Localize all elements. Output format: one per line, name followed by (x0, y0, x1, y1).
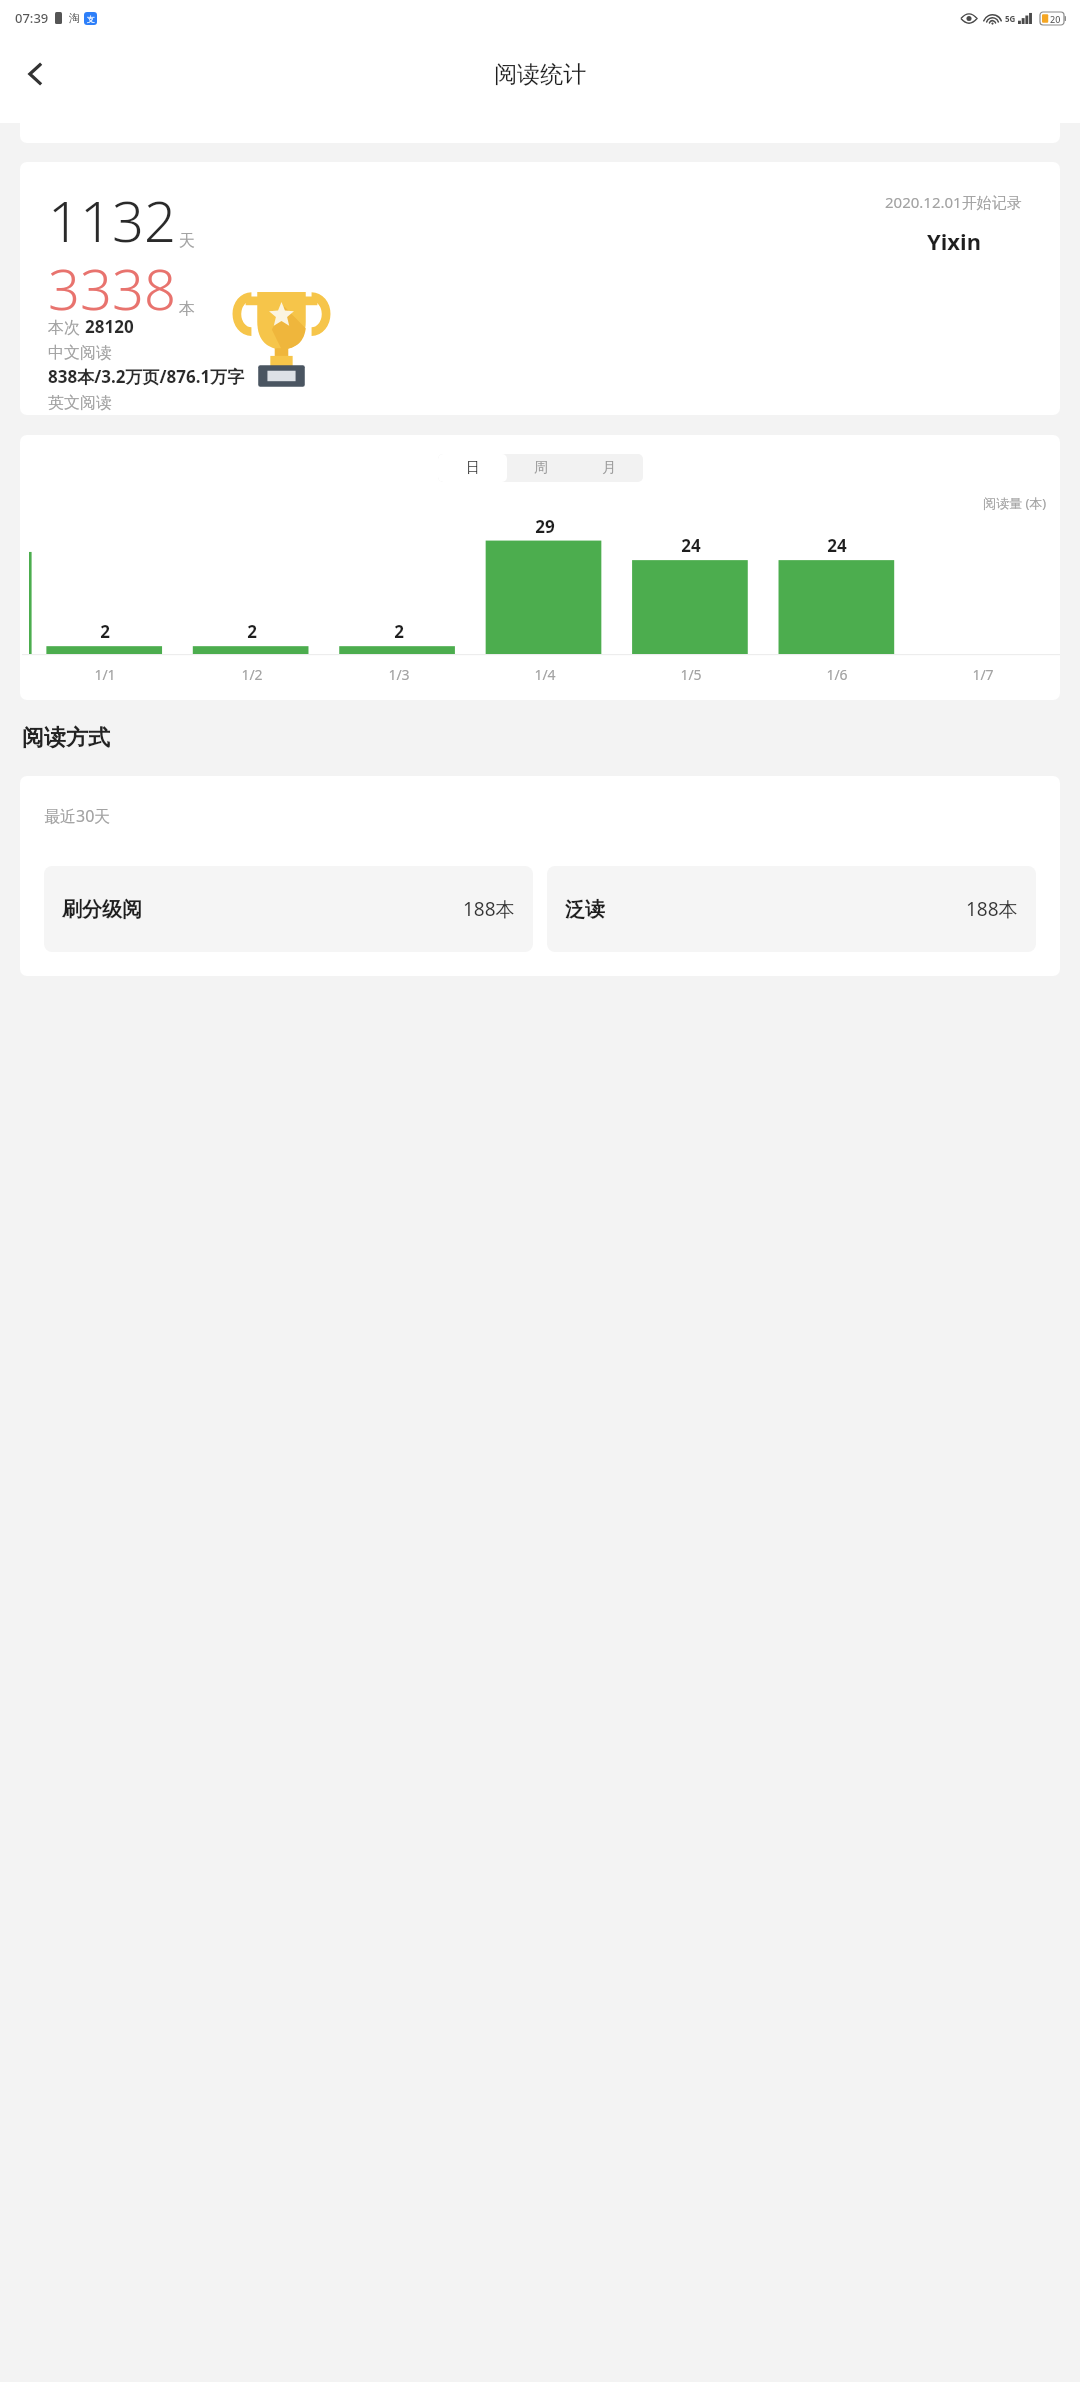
staticText: 2 (247, 620, 257, 643)
staticText: 英文阅读 (48, 393, 112, 413)
button[interactable]: 周 (507, 454, 575, 482)
staticText: 1/6 (826, 665, 848, 684)
staticText: 2 (394, 620, 404, 643)
button[interactable]: 泛读 (547, 866, 1036, 952)
staticText: 07:39 (15, 9, 49, 27)
staticText: 1/2 (241, 665, 263, 684)
button[interactable]: 2020.12.01开始记录 (20, 162, 1060, 415)
staticText: 838本/3.2万页/876.1万字 (48, 365, 245, 388)
staticText: 最近30天 (44, 805, 111, 827)
staticText: 中文阅读 (48, 343, 112, 363)
staticText: 1132 (48, 182, 176, 258)
staticText: 支 (87, 14, 95, 24)
staticText: 阅读统计 (494, 60, 586, 89)
button[interactable]: 月 (575, 454, 643, 482)
staticText: 1/5 (680, 665, 702, 684)
staticText: 20 (1050, 13, 1061, 25)
staticText: 1/7 (972, 665, 994, 684)
staticText: 188本 (966, 896, 1018, 922)
staticText: 本次 (48, 316, 85, 338)
staticText: 泛读 (565, 897, 605, 922)
staticText: 1/3 (388, 665, 410, 684)
staticText: 188本 (463, 896, 515, 922)
staticText: 月 (602, 459, 616, 477)
staticText: 24 (681, 534, 701, 557)
staticText: 本 (179, 299, 195, 319)
staticText: 1/4 (534, 665, 556, 684)
staticText: 阅读量 (本) (983, 494, 1047, 512)
staticText: 2 (100, 620, 110, 643)
staticText: 天 (179, 231, 195, 251)
button[interactable]: 日 (438, 454, 507, 482)
staticText: Yixin (927, 226, 981, 256)
staticText: 5G (1005, 13, 1016, 24)
button[interactable]: 刷分级阅 (44, 866, 533, 952)
staticText: 阅读方式 (22, 724, 110, 752)
staticText: 29 (535, 515, 555, 538)
staticText: 周 (534, 459, 548, 477)
staticText: 刷分级阅 (62, 897, 142, 922)
button[interactable]: Back (8, 46, 64, 102)
staticText: 日 (466, 459, 480, 477)
staticText: 3338 (48, 250, 176, 326)
staticText: 2020.12.01开始记录 (885, 192, 1022, 212)
staticText: 淘 (69, 11, 80, 25)
staticText: 1/1 (94, 665, 116, 684)
staticText: 28120 (85, 315, 134, 338)
staticText: 24 (827, 534, 847, 557)
